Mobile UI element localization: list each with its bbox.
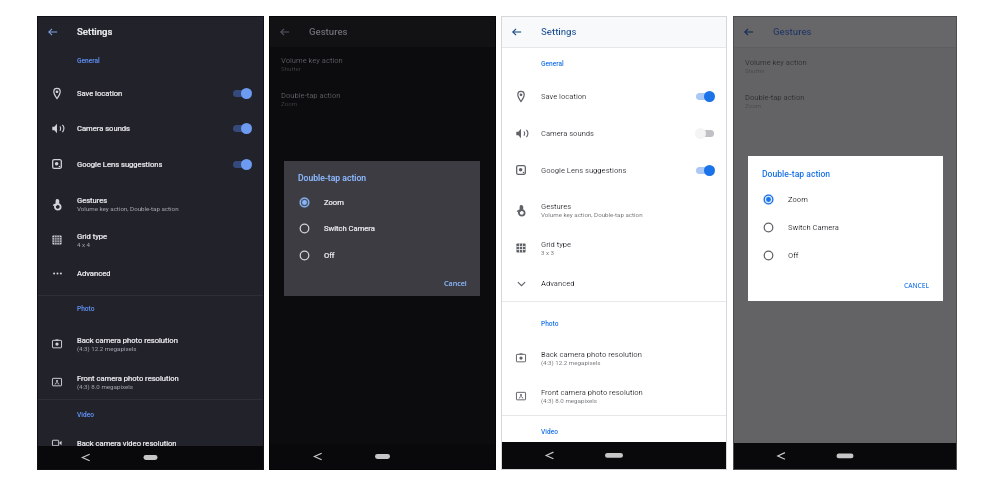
staticText: Back camera photo resolution (77, 336, 178, 345)
button[interactable]: Off (284, 244, 480, 266)
staticText: 3 x 3 (541, 249, 555, 256)
staticText: Gestures (77, 196, 108, 205)
staticText: Google Lens suggestions (541, 166, 627, 175)
button[interactable]: Gestures (37, 188, 264, 220)
button[interactable]: Front camera photo resolution (501, 380, 727, 412)
staticText: Settings (541, 26, 577, 37)
staticText: (4:3) 8.0 megapixels (77, 383, 133, 390)
staticText: Front camera photo resolution (541, 388, 643, 397)
staticText: Video (77, 411, 94, 419)
button[interactable]: Gestures (501, 194, 727, 226)
button[interactable]: Back (269, 16, 301, 47)
button[interactable]: Back (733, 16, 765, 47)
button[interactable]: Google Lens suggestions (501, 154, 727, 186)
staticText: Zoom (324, 198, 344, 207)
staticText: Photo (541, 320, 559, 328)
button[interactable]: Advanced (501, 267, 727, 299)
button[interactable]: Advanced (37, 257, 264, 289)
button[interactable]: Grid type (501, 232, 727, 264)
button[interactable]: Off (748, 244, 943, 266)
staticText: 4 x 4 (77, 241, 91, 248)
staticText: Volume key action, Double-tap action (541, 211, 643, 218)
staticText: Camera sounds (77, 124, 131, 133)
button[interactable]: Camera sounds (501, 117, 727, 149)
button[interactable]: Save location (501, 80, 727, 112)
staticText: Double-tap action (762, 169, 831, 179)
button[interactable]: CANCEL (900, 278, 934, 293)
staticText: Volume key action (745, 58, 807, 67)
button[interactable]: Back camera photo resolution (501, 342, 727, 374)
staticText: Back camera video resolution (77, 439, 177, 448)
button[interactable]: Google Lens suggestions (37, 148, 264, 180)
staticText: Zoom (745, 102, 762, 109)
staticText: (4:3) 8.0 megapixels (541, 397, 597, 404)
staticText: Gestures (541, 202, 572, 211)
staticText: Zoom (788, 195, 808, 204)
staticText: General (77, 57, 100, 65)
button[interactable]: Zoom (284, 191, 480, 213)
staticText: CANCEL (904, 281, 930, 290)
staticText: Save location (541, 92, 587, 101)
staticText: Switch Camera (788, 223, 839, 232)
staticText: General (541, 60, 564, 68)
staticText: Photo (77, 305, 95, 313)
staticText: Cancel (444, 278, 467, 288)
staticText: Volume key action, Double-tap action (77, 205, 179, 212)
staticText: Double-tap action (745, 93, 805, 102)
staticText: Advanced (541, 279, 575, 288)
button[interactable]: Cancel (440, 275, 471, 291)
button[interactable]: Back camera photo resolution (37, 328, 264, 360)
button[interactable]: Grid type (37, 224, 264, 256)
staticText: Video (541, 428, 558, 436)
staticText: Off (788, 251, 799, 260)
button[interactable]: Save location (37, 77, 264, 109)
button[interactable]: Back (501, 16, 533, 47)
staticText: Advanced (77, 269, 111, 278)
staticText: Zoom (281, 100, 298, 107)
button[interactable]: Back (37, 16, 69, 47)
staticText: Double-tap action (281, 91, 341, 100)
staticText: Double-tap action (298, 173, 367, 183)
staticText: Shutter (281, 65, 301, 72)
staticText: Volume key action (281, 56, 343, 65)
staticText: Settings (77, 26, 113, 37)
staticText: Google Lens suggestions (77, 160, 163, 169)
staticText: Gestures (309, 26, 348, 37)
staticText: Off (324, 251, 335, 260)
button[interactable]: Front camera photo resolution (37, 366, 264, 398)
staticText: Grid type (77, 232, 108, 241)
staticText: Gestures (773, 26, 812, 37)
staticText: Save location (77, 89, 123, 98)
staticText: Back camera photo resolution (541, 350, 642, 359)
staticText: Shutter (745, 67, 765, 74)
staticText: (4:3) 12.2 megapixels (77, 345, 137, 352)
button[interactable]: Camera sounds (37, 112, 264, 144)
button[interactable]: Back camera video resolution (37, 427, 264, 459)
button[interactable]: Zoom (748, 188, 943, 210)
staticText: Front camera photo resolution (77, 374, 179, 383)
staticText: Camera sounds (541, 129, 595, 138)
staticText: Grid type (541, 240, 572, 249)
staticText: Switch Camera (324, 224, 375, 233)
staticText: (4:3) 12.2 megapixels (541, 359, 601, 366)
button[interactable]: Switch Camera (284, 217, 480, 239)
button[interactable]: Switch Camera (748, 216, 943, 238)
